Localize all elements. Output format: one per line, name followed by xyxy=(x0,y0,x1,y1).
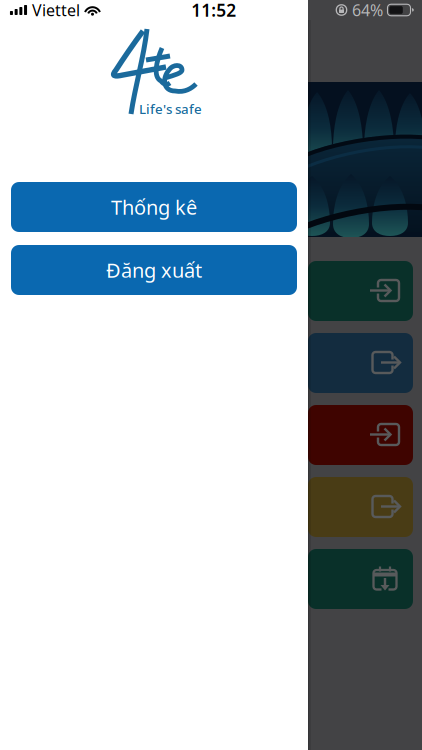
button[interactable]: Ra ca phụ xyxy=(308,477,413,537)
button[interactable]: Thống kê xyxy=(11,182,297,232)
button[interactable]: Đăng xuất xyxy=(11,245,297,295)
staticText: 64% xyxy=(352,0,383,21)
staticText: Viettel xyxy=(32,0,80,21)
button[interactable]: Lịch làm việc xyxy=(308,549,413,609)
button[interactable]: Vào ca xyxy=(308,261,413,321)
staticText: Life's safe xyxy=(139,100,202,118)
staticText: Đăng xuất xyxy=(106,257,202,283)
staticText: 11:52 xyxy=(191,0,236,21)
staticText: Thống kê xyxy=(111,194,197,220)
button[interactable]: Ra ca xyxy=(308,333,413,393)
button[interactable]: Vào ca phụ xyxy=(308,405,413,465)
